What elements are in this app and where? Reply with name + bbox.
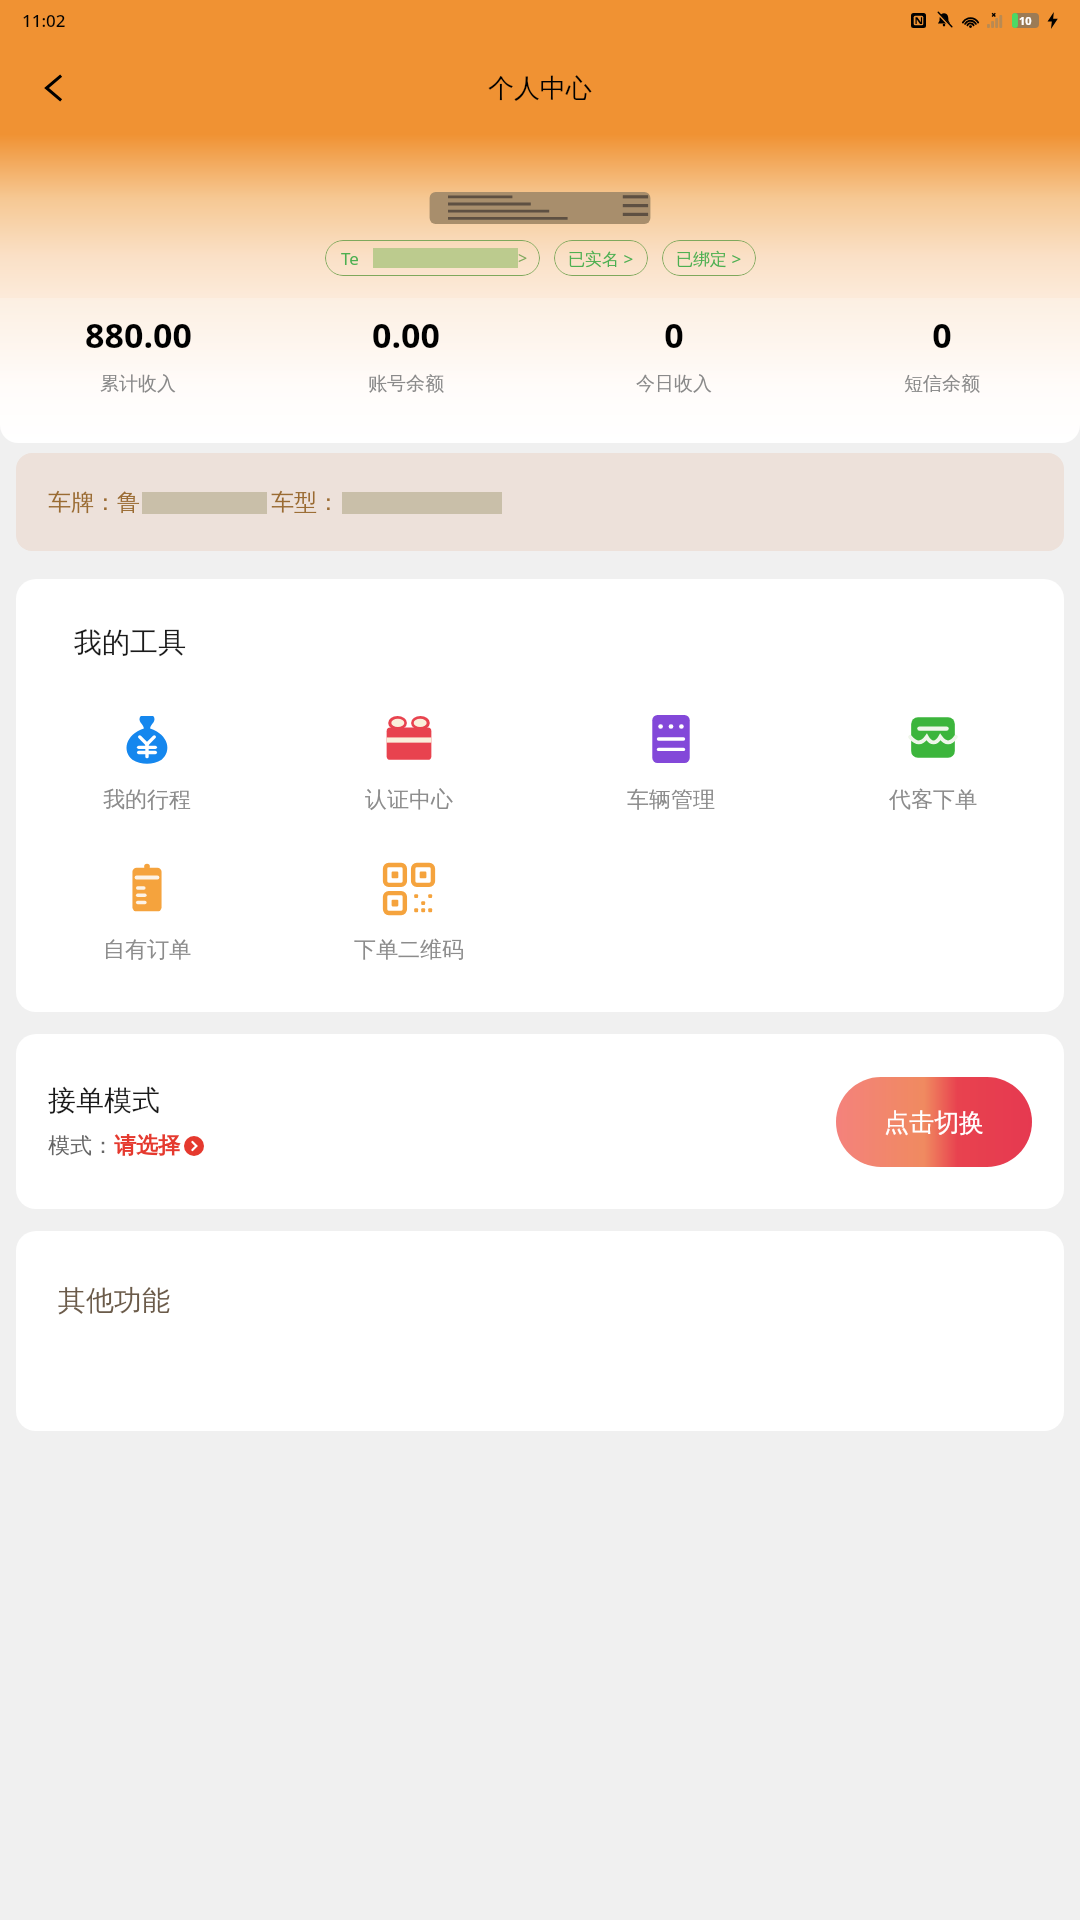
staticText: Te	[341, 247, 359, 270]
button[interactable]: 认证中心	[278, 710, 540, 814]
staticText: >	[518, 247, 528, 269]
button[interactable]: 0	[544, 312, 804, 396]
staticText: 累计收入	[100, 372, 176, 396]
staticText: 11:02	[22, 9, 66, 32]
button[interactable]: 点击切换	[836, 1077, 1032, 1167]
button[interactable]: 车牌：鲁	[16, 453, 1064, 551]
staticText: 短信余额	[904, 372, 980, 396]
staticText: 接单模式	[48, 1083, 160, 1118]
button[interactable]: Te	[325, 240, 540, 276]
button[interactable]: Back	[22, 56, 86, 120]
staticText: 已绑定 >	[676, 247, 742, 270]
staticText: 我的行程	[103, 786, 191, 814]
staticText: 880.00	[85, 312, 192, 358]
staticText: 模式：	[48, 1132, 114, 1160]
button[interactable]: 已实名 >	[554, 240, 648, 276]
button[interactable]: 880.00	[8, 312, 268, 396]
staticText: 其他功能	[58, 1283, 170, 1318]
button[interactable]: 0	[812, 312, 1072, 396]
staticText: 点击切换	[884, 1107, 984, 1138]
button[interactable]: 模式：	[48, 1132, 204, 1160]
staticText: 车型：	[271, 488, 340, 517]
staticText: 10	[1019, 13, 1032, 28]
staticText: 0	[932, 312, 952, 358]
button[interactable]: 我的行程	[16, 710, 278, 814]
staticText: 我的工具	[74, 625, 186, 660]
staticText: 今日收入	[636, 372, 712, 396]
staticText: 个人中心	[488, 72, 592, 105]
button[interactable]: 车辆管理	[540, 710, 802, 814]
staticText: 下单二维码	[354, 936, 464, 964]
staticText: 账号余额	[368, 372, 444, 396]
staticText: 车牌：鲁	[48, 488, 140, 517]
button[interactable]: 代客下单	[802, 710, 1064, 814]
staticText: 请选择	[114, 1132, 180, 1160]
staticText: 0.00	[372, 312, 440, 358]
staticText: 自有订单	[103, 936, 191, 964]
button[interactable]: 下单二维码	[278, 860, 540, 964]
staticText: 认证中心	[365, 786, 453, 814]
staticText: 车辆管理	[627, 786, 715, 814]
staticText: 0	[664, 312, 684, 358]
button[interactable]: 0.00	[276, 312, 536, 396]
button[interactable]: 已绑定 >	[662, 240, 756, 276]
staticText: 已实名 >	[568, 247, 634, 270]
staticText: 代客下单	[889, 786, 977, 814]
button[interactable]: 自有订单	[16, 860, 278, 964]
